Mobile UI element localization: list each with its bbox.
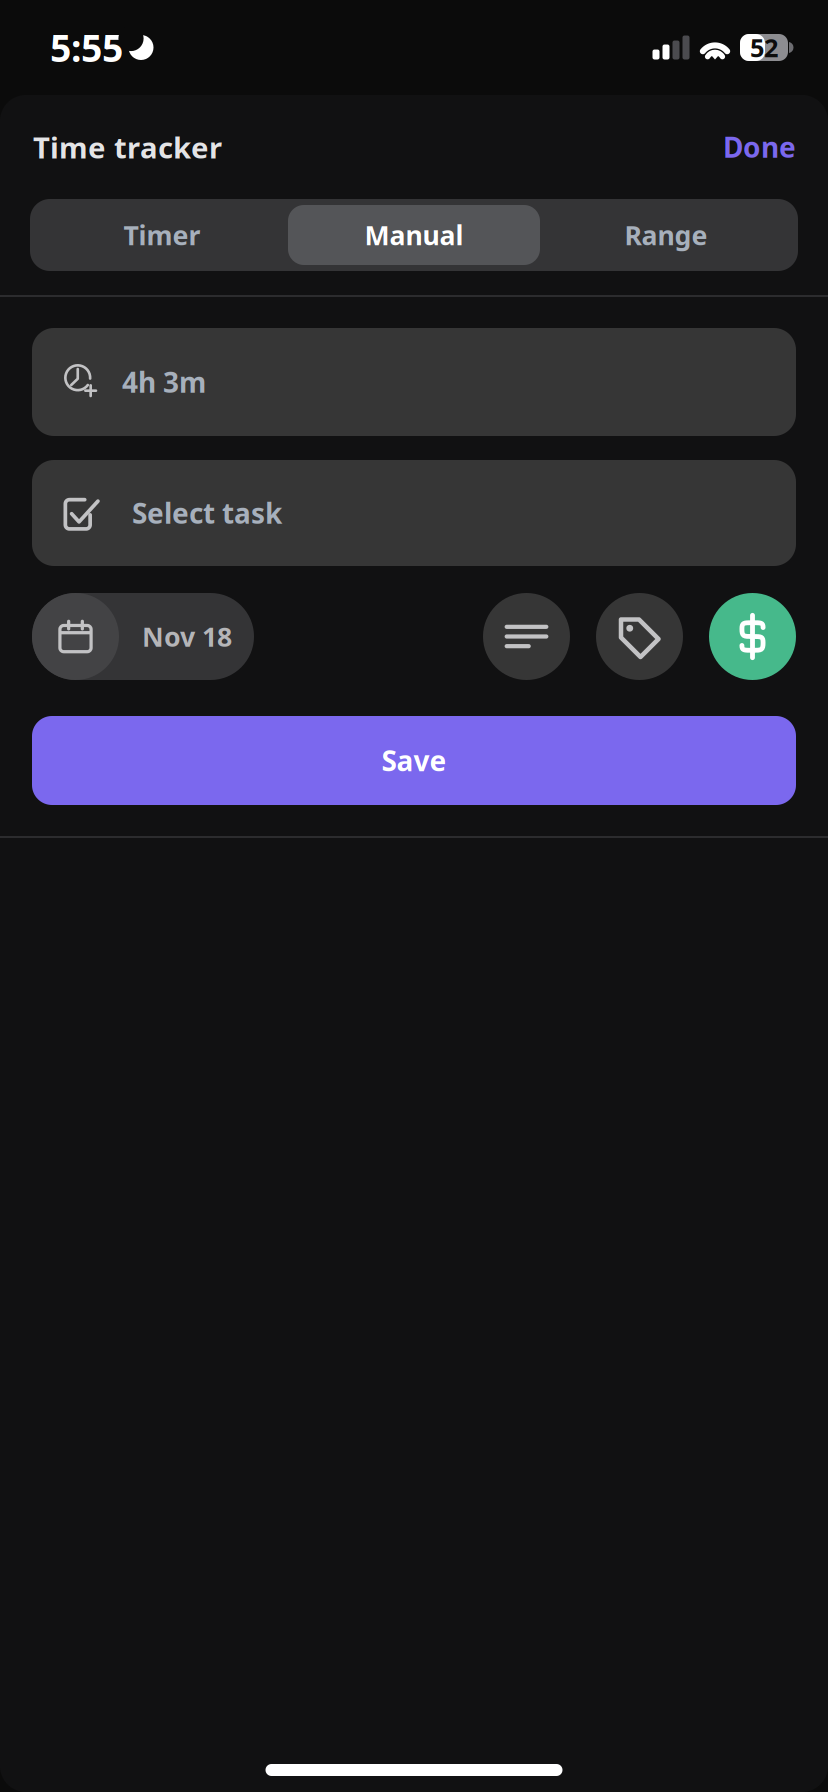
staticText: 4h 3m bbox=[122, 363, 206, 401]
staticText: Nov 18 bbox=[142, 619, 232, 654]
button[interactable]: Select task bbox=[32, 460, 796, 566]
staticText: Done bbox=[723, 128, 796, 166]
staticText: Save bbox=[381, 742, 446, 779]
button[interactable]: Save bbox=[32, 716, 796, 805]
button[interactable]: Tags bbox=[596, 593, 683, 680]
button[interactable]: 4h 3m bbox=[32, 328, 796, 436]
button[interactable]: Range bbox=[540, 205, 792, 265]
staticText: Range bbox=[624, 217, 707, 253]
button[interactable]: Manual bbox=[288, 205, 540, 265]
button[interactable]: Timer bbox=[36, 205, 288, 265]
staticText: Select task bbox=[132, 494, 282, 532]
staticText: 52 bbox=[750, 31, 778, 64]
staticText: Timer bbox=[123, 217, 200, 253]
button[interactable]: Nov 18 bbox=[32, 593, 254, 680]
staticText: Time tracker bbox=[33, 127, 222, 166]
staticText: Manual bbox=[364, 217, 463, 253]
button[interactable]: Done bbox=[699, 114, 796, 180]
button[interactable]: Note bbox=[483, 593, 570, 680]
staticText: 5:55 bbox=[50, 23, 123, 72]
button[interactable]: Billable bbox=[709, 593, 796, 680]
